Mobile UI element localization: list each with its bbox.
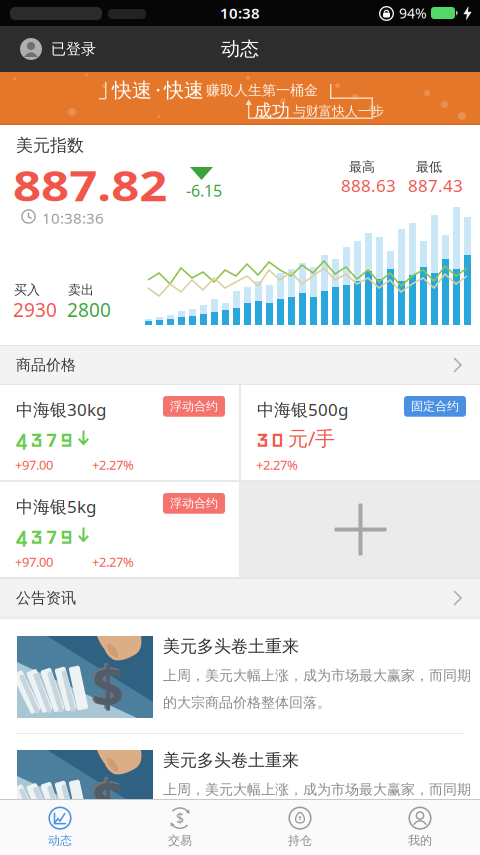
staticText: 上周，美元大幅上涨，成为市场最大赢家，而同期: [163, 667, 471, 684]
staticText: $: [90, 760, 122, 834]
staticText: $: [92, 648, 124, 722]
staticText: 最低: [416, 159, 442, 175]
button[interactable]: 持仓: [240, 800, 360, 854]
staticText: +97.00: [15, 553, 53, 570]
staticText: 浮动合约: [170, 399, 218, 414]
staticText: 的大宗商品价格整体回落。: [163, 694, 331, 711]
staticText: 最高: [349, 159, 375, 175]
staticText: 成功: [254, 100, 290, 122]
staticText: 887.43: [408, 174, 463, 197]
button[interactable]: 添加产品: [241, 482, 480, 577]
staticText: 固定合约: [411, 399, 459, 414]
button[interactable]: 中海银500g: [241, 385, 480, 480]
staticText: 快速: [112, 78, 152, 103]
staticText: 2930: [13, 297, 57, 322]
staticText: 元/手: [288, 425, 335, 451]
button[interactable]: $: [0, 734, 480, 847]
staticText: 4379: [14, 423, 74, 453]
button[interactable]: 中海银30kg: [0, 385, 239, 480]
staticText: 中海银30kg: [16, 398, 106, 421]
staticText: 赚取人生第一桶金: [206, 82, 318, 99]
staticText: 美元多头卷土重来: [163, 636, 299, 657]
button[interactable]: 我的: [360, 800, 480, 854]
staticText: 已登录: [51, 40, 96, 58]
button[interactable]: 中海银5kg: [0, 482, 239, 577]
button[interactable]: $: [120, 800, 240, 854]
staticText: 美元指数: [16, 135, 84, 156]
staticText: 动态: [221, 37, 259, 61]
staticText: +2.27%: [256, 456, 298, 473]
staticText: 卖出: [68, 282, 94, 298]
staticText: 美元多头卷土重来: [163, 750, 299, 771]
staticText: 浮动合约: [170, 496, 218, 511]
button[interactable]: 公告资讯: [0, 578, 480, 620]
staticText: $: [176, 809, 184, 827]
staticText: 持仓: [288, 833, 312, 848]
staticText: 交易: [168, 833, 192, 848]
staticText: 我的: [408, 833, 432, 848]
staticText: ·: [156, 80, 160, 101]
staticText: 4379: [14, 520, 74, 550]
staticText: 商品价格: [16, 356, 76, 374]
staticText: 上周，美元大幅上涨，成为市场最大赢家，而同期: [163, 781, 471, 798]
staticText: +97.00: [15, 456, 53, 473]
staticText: 888.63: [341, 174, 396, 197]
staticText: 10:38: [220, 3, 260, 23]
staticText: 中海银500g: [257, 398, 348, 421]
button[interactable]: 已登录: [0, 26, 96, 72]
staticText: 中海银5kg: [16, 495, 96, 518]
staticText: 30: [255, 423, 285, 453]
staticText: $: [92, 762, 124, 836]
staticText: 快速: [164, 78, 204, 103]
staticText: 94%: [399, 4, 427, 22]
staticText: 2800: [67, 297, 111, 322]
button[interactable]: 商品价格: [0, 345, 480, 385]
button[interactable]: 快速: [0, 72, 480, 125]
staticText: 10:38:36: [42, 208, 104, 228]
staticText: 887.82: [13, 157, 145, 213]
staticText: 买入: [14, 282, 40, 298]
staticText: 公告资讯: [16, 589, 76, 607]
staticText: -6.15: [186, 180, 222, 201]
staticText: +2.27%: [92, 553, 134, 570]
staticText: 的大宗商品价格整体回落。: [163, 808, 331, 825]
staticText: 与财富快人一步: [293, 103, 384, 119]
staticText: 动态: [48, 833, 72, 848]
staticText: +2.27%: [92, 456, 134, 473]
button[interactable]: $: [0, 620, 480, 733]
staticText: $: [90, 646, 122, 720]
button[interactable]: 动态: [0, 800, 120, 854]
